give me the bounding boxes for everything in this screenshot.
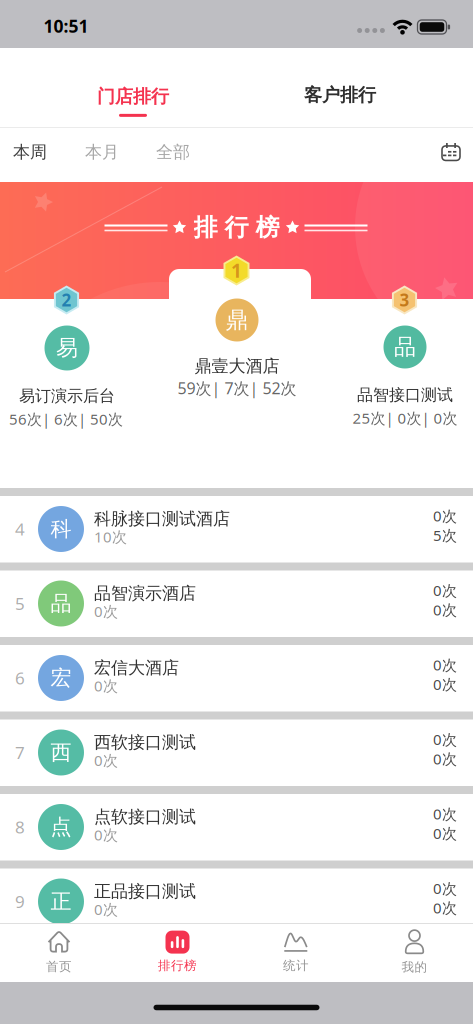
staticText: 宏信大酒店 — [94, 657, 179, 678]
button[interactable]: 6 — [0, 645, 473, 711]
button[interactable]: 首页 — [4, 924, 114, 980]
staticText: 6 — [15, 666, 25, 690]
staticText: 25次| 0次| 0次 — [352, 408, 457, 428]
button[interactable]: 全部 — [156, 141, 190, 163]
button[interactable]: 我的 — [359, 924, 469, 980]
button[interactable]: 8 — [0, 794, 473, 860]
button[interactable]: 排行榜 — [122, 924, 232, 980]
staticText: 本周 — [13, 141, 47, 163]
staticText: 0次 — [433, 878, 457, 898]
button[interactable]: 选择日期 — [441, 143, 460, 161]
staticText: 品 — [50, 590, 71, 617]
staticText: 0次 — [433, 804, 457, 824]
staticText: 鼎壹大酒店 — [194, 355, 279, 377]
button[interactable]: 1 — [162, 255, 312, 405]
button[interactable]: 5 — [0, 570, 473, 636]
staticText: 56次| 6次| 50次 — [9, 409, 123, 429]
staticText: 0次 — [94, 899, 118, 919]
staticText: 0次 — [94, 675, 118, 696]
staticText: 0次 — [433, 897, 457, 918]
staticText: 5次 — [433, 525, 457, 545]
staticText: 5 — [15, 592, 25, 615]
staticText: 0次 — [433, 823, 457, 843]
staticText: 0次 — [433, 748, 457, 769]
staticText: 9 — [15, 890, 25, 913]
button[interactable]: 门店排行 — [97, 85, 169, 117]
staticText: 0次 — [433, 729, 457, 749]
staticText: 宏 — [50, 665, 71, 691]
staticText: 西软接口测试 — [94, 732, 196, 753]
staticText: 点软接口测试 — [94, 806, 196, 827]
staticText: 易 — [56, 334, 78, 362]
button[interactable]: 4 — [0, 496, 473, 562]
staticText: 全部 — [156, 141, 190, 163]
staticText: 0次 — [94, 824, 118, 845]
staticText: 0次 — [94, 750, 118, 770]
staticText: 10:51 — [43, 14, 88, 38]
staticText: 0次 — [433, 580, 457, 600]
staticText: 59次| 7次| 52次 — [177, 377, 296, 399]
button[interactable]: 客户排行 — [304, 84, 376, 106]
staticText: 0次 — [433, 655, 457, 675]
staticText: 排 行 榜 — [193, 212, 279, 243]
button[interactable]: 本周 — [13, 141, 47, 163]
staticText: 科 — [50, 516, 71, 542]
staticText: 7 — [15, 741, 25, 764]
button[interactable]: 9 — [0, 868, 473, 934]
staticText: 0次 — [433, 674, 457, 694]
button[interactable]: 本月 — [85, 141, 119, 163]
staticText: 西 — [50, 739, 71, 766]
staticText: 首页 — [46, 959, 72, 974]
staticText: 点 — [50, 814, 71, 840]
staticText: 易订演示后台 — [19, 386, 115, 406]
staticText: 品 — [394, 333, 416, 361]
staticText: 本月 — [85, 141, 119, 163]
staticText: 品智接口测试 — [357, 385, 453, 405]
button[interactable]: 统计 — [241, 924, 351, 980]
staticText: 1 — [231, 258, 242, 283]
staticText: 8 — [15, 815, 25, 839]
button[interactable]: 3 — [338, 285, 472, 435]
staticText: 品智演示酒店 — [94, 583, 196, 604]
staticText: 正品接口测试 — [94, 881, 196, 902]
staticText: 统计 — [283, 958, 309, 973]
staticText: 客户排行 — [304, 84, 376, 106]
staticText: 我的 — [401, 959, 427, 975]
button[interactable]: 7 — [0, 719, 473, 785]
staticText: 0次 — [94, 601, 118, 621]
button[interactable]: 2 — [0, 285, 134, 435]
staticText: 鼎 — [225, 306, 248, 334]
staticText: 门店排行 — [97, 85, 169, 108]
staticText: 10次 — [94, 526, 127, 547]
staticText: 正 — [50, 888, 71, 915]
staticText: 2 — [61, 288, 71, 312]
staticText: 0次 — [433, 506, 457, 526]
staticText: 科脉接口测试酒店 — [94, 508, 230, 529]
staticText: 0次 — [433, 599, 457, 620]
staticText: 4 — [15, 517, 25, 541]
staticText: 排行榜 — [158, 958, 197, 973]
staticText: 3 — [399, 288, 409, 312]
